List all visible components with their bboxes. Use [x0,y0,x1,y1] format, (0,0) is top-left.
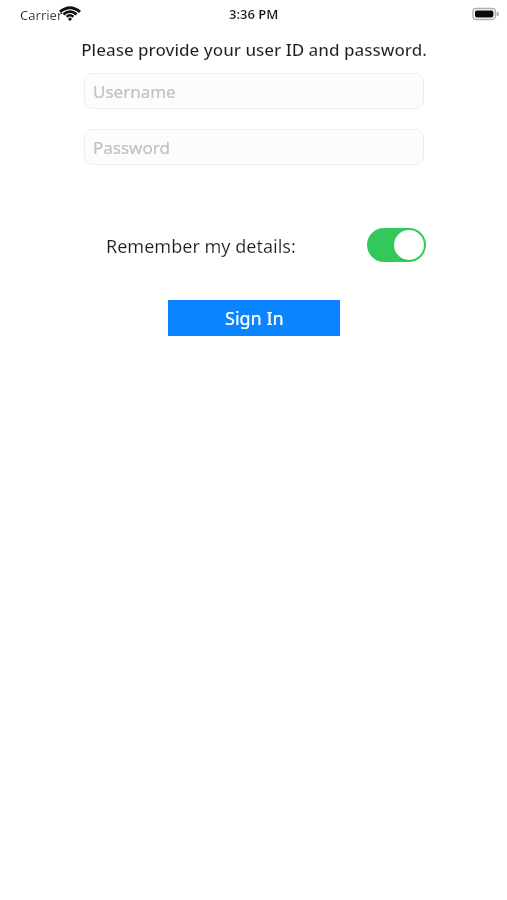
staticText: Password [93,136,170,159]
staticText: Username [93,80,176,103]
button[interactable]: Username [84,73,424,109]
staticText: Carrier [20,6,63,24]
button[interactable]: Remember my details: [106,232,318,260]
staticText: Remember my details: [106,234,296,259]
staticText: Sign In [225,306,284,331]
other: Wi-Fi signal [60,6,80,22]
button[interactable]: Password [84,129,424,165]
staticText: 3:36 PM [229,5,279,23]
button[interactable]: Remember my details toggle, on [367,228,426,262]
button[interactable]: Sign In [168,300,340,336]
staticText: Please provide your user ID and password… [81,38,427,61]
other: Battery full [473,7,499,21]
